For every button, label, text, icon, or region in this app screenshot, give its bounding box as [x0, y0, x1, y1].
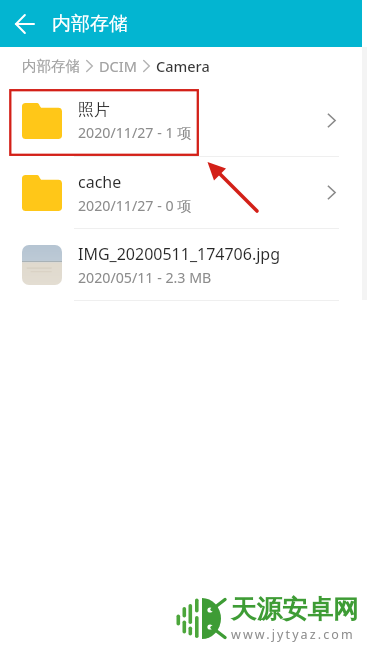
staticText: 内部存储 [22, 57, 80, 75]
staticText: 2020/11/27 - 0 项 [78, 196, 192, 215]
staticText: Camera [156, 56, 210, 76]
staticText: 内部存储 [52, 12, 128, 36]
staticText: 2020/11/27 - 1 项 [78, 123, 192, 142]
button[interactable]: 照片 [0, 85, 367, 157]
staticText: 天源安卓网 [231, 593, 359, 625]
staticText: 照片 [78, 100, 110, 120]
button[interactable]: IMG_20200511_174706.jpg [0, 229, 367, 301]
staticText: DCIM [99, 56, 137, 76]
button[interactable]: Back [14, 12, 35, 36]
staticText: www.jytyaz.com [231, 626, 355, 643]
staticText: cache [78, 171, 122, 193]
button[interactable]: cache [0, 157, 367, 229]
staticText: 2020/05/11 - 2.3 MB [78, 268, 212, 287]
staticText: IMG_20200511_174706.jpg [78, 243, 281, 265]
